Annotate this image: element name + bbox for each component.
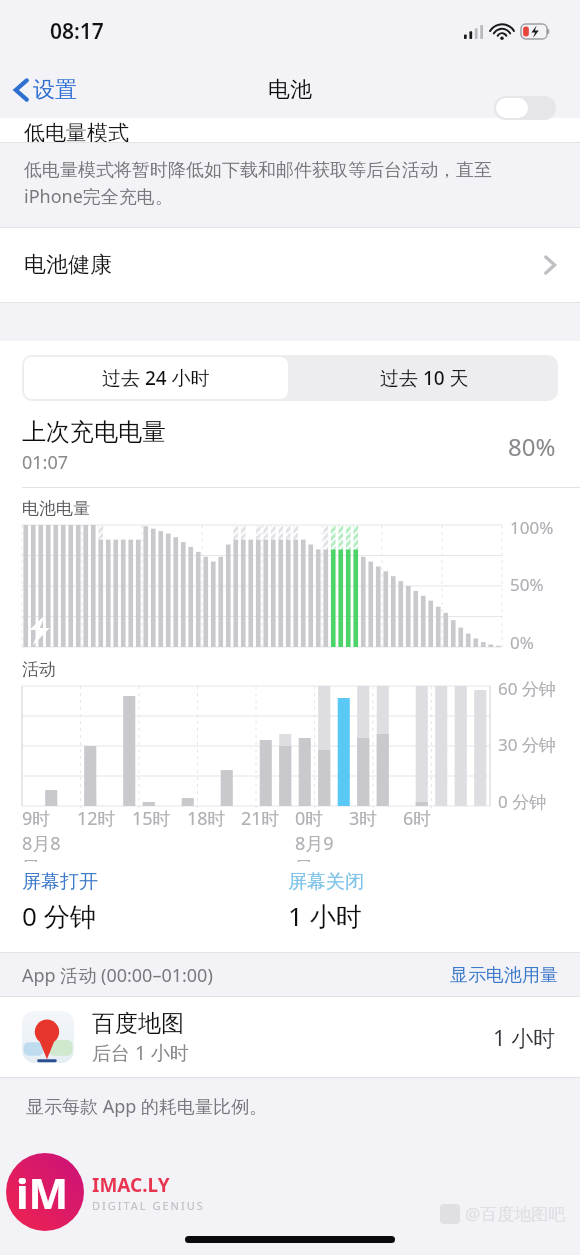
button[interactable]: 百度地图: [0, 997, 580, 1077]
staticText: App 活动 (00:00–01:00): [22, 963, 213, 988]
staticText: IMAC.LY: [92, 1172, 170, 1198]
staticText: 百度地图: [92, 1009, 184, 1038]
staticText: 屏幕关闭: [288, 870, 364, 894]
button[interactable]: 过去 24 小时: [24, 357, 288, 399]
staticText: iM: [16, 1164, 69, 1221]
staticText: 设置: [33, 76, 77, 104]
staticText: 活动: [22, 659, 56, 680]
staticText: 后台 1 小时: [92, 1040, 189, 1066]
staticText: 100%: [510, 516, 554, 539]
staticText: 15时: [132, 806, 171, 831]
staticText: 0时: [295, 806, 324, 831]
staticText: 显示每款 App 的耗电量比例。: [26, 1094, 268, 1119]
button[interactable]: 设置: [0, 70, 87, 110]
button[interactable]: 过去 10 天: [290, 355, 558, 401]
staticText: 12时: [77, 806, 116, 831]
staticText: 50%: [510, 573, 544, 596]
staticText: 屏幕打开: [22, 870, 98, 894]
staticText: 1 小时: [493, 1022, 556, 1052]
staticText: 01:07: [22, 450, 69, 475]
staticText: 显示电池用量: [450, 964, 558, 987]
button[interactable]: Low Power Mode toggle: [494, 96, 556, 120]
staticText: 低电量模式将暂时降低如下载和邮件获取等后台活动，直至 iPhone完全充电。: [24, 157, 554, 209]
staticText: 电池电量: [22, 498, 90, 519]
staticText: 60 分钟: [498, 677, 556, 700]
staticText: 低电量模式: [24, 120, 129, 142]
staticText: 0 分钟: [498, 790, 547, 813]
staticText: 过去 24 小时: [102, 365, 210, 391]
staticText: DIGITAL GENIUS: [92, 1198, 205, 1213]
staticText: 电池: [268, 76, 312, 104]
staticText: 0 分钟: [22, 898, 96, 934]
staticText: 3时: [349, 806, 378, 831]
button[interactable]: 电池健康: [0, 228, 580, 302]
staticText: 9时: [22, 806, 51, 831]
staticText: @百度地图吧: [465, 1202, 566, 1225]
staticText: 上次充电电量: [22, 417, 166, 447]
staticText: 过去 10 天: [380, 365, 469, 391]
staticText: 电池健康: [24, 251, 112, 279]
staticText: 0%: [510, 631, 534, 654]
staticText: 80%: [508, 430, 556, 463]
button[interactable]: 显示电池用量: [450, 964, 558, 987]
staticText: 08:17: [50, 17, 104, 46]
staticText: 1 小时: [288, 898, 362, 934]
staticText: 8月8日: [22, 831, 77, 862]
staticText: 21时: [241, 806, 280, 831]
staticText: 30 分钟: [498, 733, 556, 756]
staticText: 18时: [187, 806, 226, 831]
staticText: 6时: [403, 806, 432, 831]
staticText: 8月9日: [295, 831, 349, 862]
